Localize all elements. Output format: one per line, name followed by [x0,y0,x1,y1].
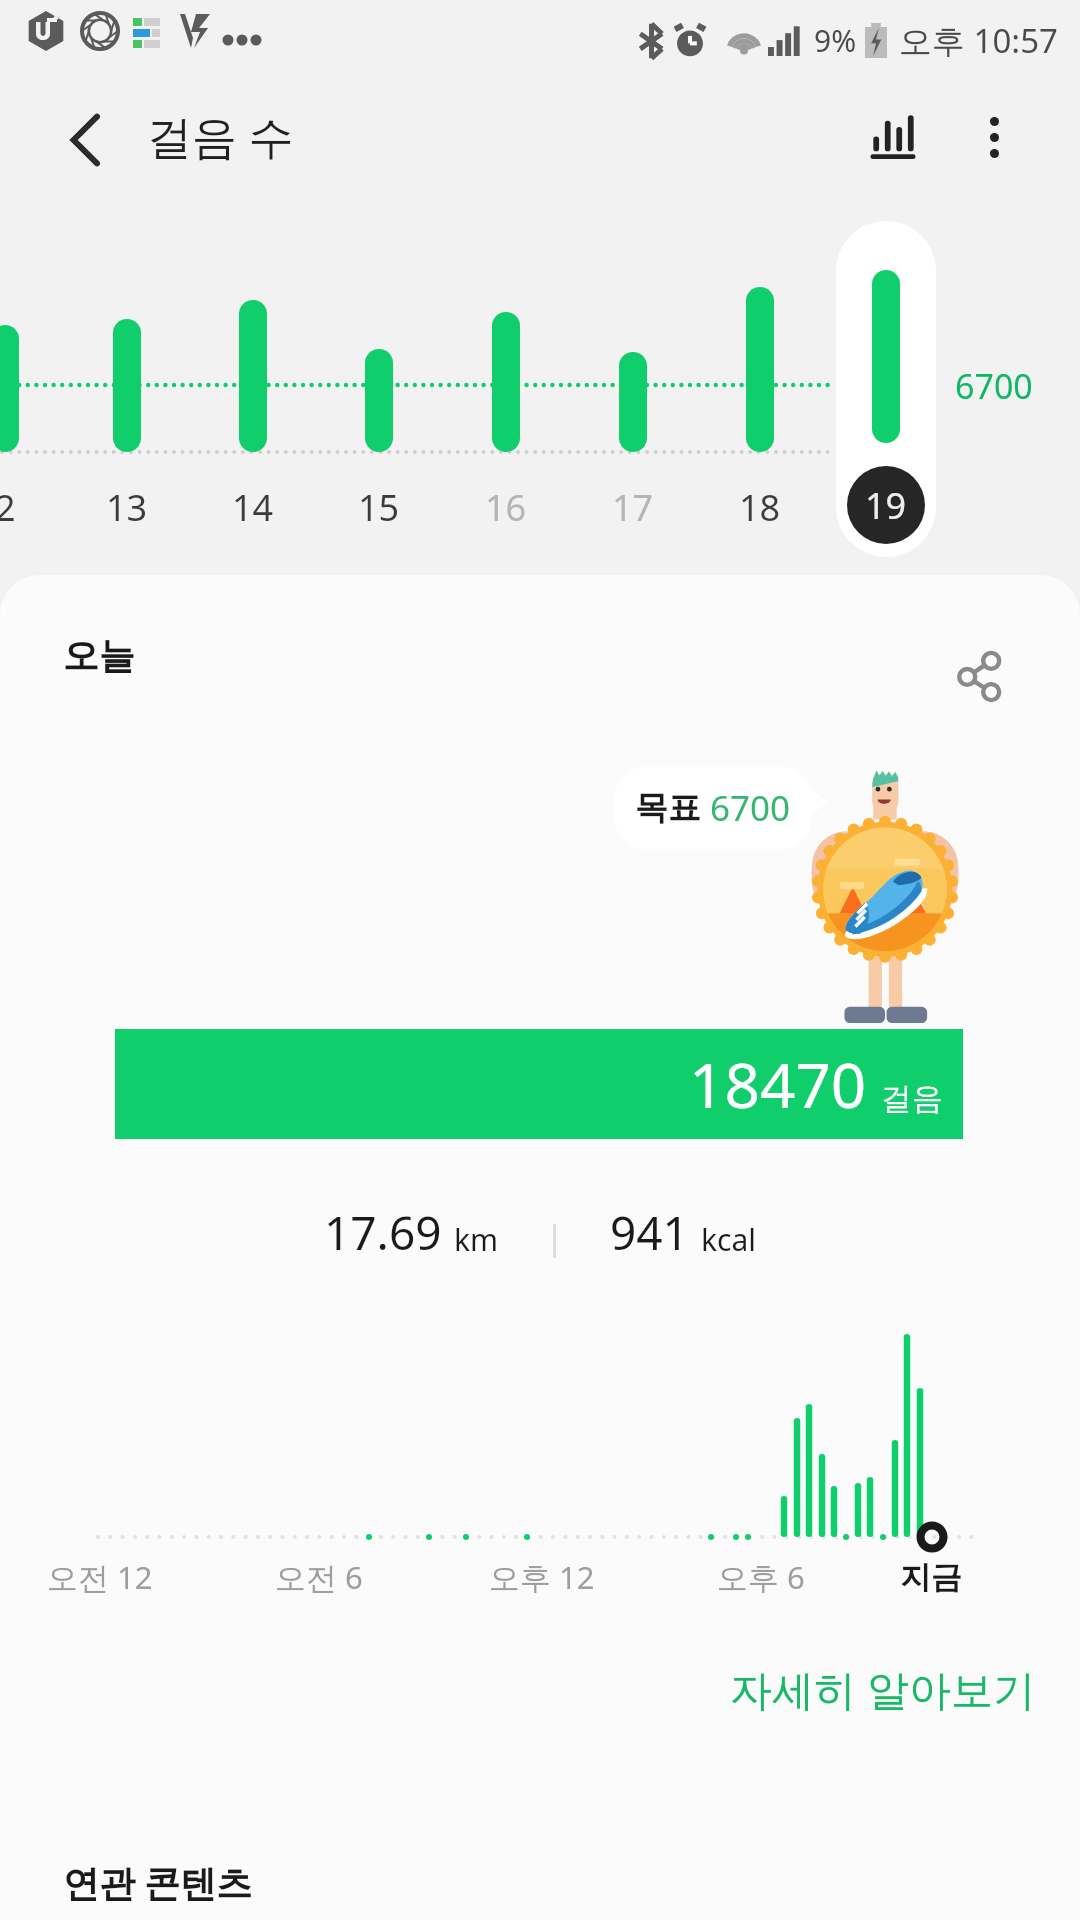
staticText: 9% [814,20,857,61]
staticText: 15 [358,483,400,532]
staticText: 17.69 [324,1201,442,1264]
staticText: km [454,1219,499,1260]
staticText: 6700 [710,784,791,832]
button[interactable]: 17 [573,221,693,557]
staticText: 13 [106,483,148,532]
staticText: 941 [610,1201,689,1264]
button[interactable]: 15 [319,221,439,557]
staticText: 17 [612,483,654,532]
staticText: 6700 [955,363,1033,409]
button[interactable]: 16 [446,221,566,557]
button[interactable]: Back [30,85,140,195]
staticText: 오전 6 [275,1556,363,1598]
button[interactable]: Chart [838,85,948,195]
staticText: 19 [865,481,907,530]
staticText: 걸음 수 [147,105,294,166]
staticText: 2 [0,483,16,532]
staticText: 14 [232,483,274,532]
staticText: 18 [739,483,781,532]
button[interactable]: 2 [0,221,65,557]
button[interactable]: 19 [836,221,936,557]
button[interactable]: 18 [700,221,820,557]
button[interactable]: 18470 [115,1029,963,1139]
staticText: kcal [701,1219,756,1260]
staticText: 자세히 알아보기 [730,1660,1035,1717]
staticText: 오후 6 [717,1556,805,1598]
button[interactable]: Share [933,630,1025,722]
staticText: 16 [485,483,527,532]
button[interactable]: 13 [67,221,187,557]
staticText: 목표 [635,787,701,829]
staticText: 오후 10:57 [899,18,1058,63]
button[interactable]: 14 [193,221,313,557]
button[interactable]: 자세히 알아보기 [712,1648,1053,1729]
staticText: 연관 콘텐츠 [63,1858,253,1907]
staticText: 걸음 [881,1079,943,1118]
staticText: 18470 [689,1042,867,1126]
staticText: 오늘 [63,633,135,678]
button[interactable]: More options [939,82,1049,192]
staticText: 오전 12 [47,1556,153,1598]
staticText: 지금 [900,1558,962,1597]
staticText: 오후 12 [489,1556,595,1598]
